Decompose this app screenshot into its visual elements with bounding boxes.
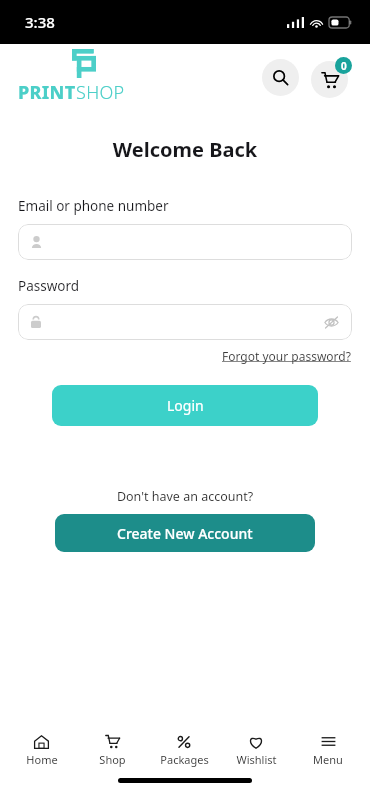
button[interactable]: Login [52, 385, 318, 426]
staticText: Don't have an account? [0, 488, 370, 505]
staticText: Welcome Back [0, 136, 370, 163]
staticText: Menu [313, 752, 343, 767]
button[interactable]: Search [262, 59, 299, 96]
staticText: Shop [99, 752, 126, 767]
staticText: Home [26, 752, 58, 767]
button[interactable]: Show password [324, 316, 339, 329]
staticText: Email or phone number [18, 197, 169, 215]
staticText: Wishlist [236, 752, 277, 767]
button[interactable]: Forgot your password? [222, 348, 351, 364]
button[interactable]: Shop [77, 731, 148, 769]
staticText: 3:38 [25, 12, 55, 32]
button[interactable]: Show password [18, 304, 352, 340]
staticText: Login [167, 396, 204, 415]
staticText: SHOP [76, 80, 125, 105]
button[interactable]: Menu [292, 731, 364, 769]
button[interactable]: Packages [148, 731, 220, 769]
button[interactable]: Create New Account [55, 514, 315, 552]
button[interactable]: Wishlist [220, 731, 292, 769]
staticText: PRINT [18, 80, 76, 105]
staticText: Forgot your password? [222, 348, 351, 364]
staticText: Packages [160, 752, 209, 767]
staticText: 0 [341, 59, 347, 73]
staticText: Create New Account [117, 524, 253, 543]
button[interactable]: Home [6, 731, 77, 769]
button[interactable]: Cart, 0 items [311, 61, 348, 98]
staticText: Password [18, 277, 80, 295]
button[interactable]: Print Shop home [18, 49, 125, 105]
button[interactable] [18, 224, 352, 260]
